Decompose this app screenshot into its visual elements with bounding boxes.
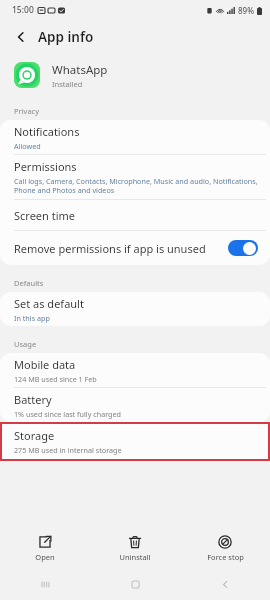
button[interactable]: Battery [0,388,270,422]
button[interactable]: Back [8,24,34,50]
button[interactable]: WhatsApp [0,54,270,96]
staticText: WhatsApp [52,62,108,78]
button[interactable]: Set as default [0,292,270,326]
button[interactable]: Recent apps [0,568,90,600]
staticText: Notifications [14,124,80,139]
staticText: App info [38,28,94,46]
button[interactable]: Open [0,535,90,562]
staticText: Open [35,552,55,562]
staticText: Storage [14,428,55,443]
staticText: 1% used since last fully charged [14,409,121,419]
staticText: 275 MB used in internal storage [14,445,122,455]
staticText: Call logs, Camera, Contacts, Microphone,… [14,176,258,195]
staticText: Installed [52,79,83,89]
button[interactable]: Remove permissions toggle [228,240,258,256]
staticText: Set as default [14,296,84,311]
button[interactable]: Notifications [0,120,270,154]
staticText: Remove permissions if app is unused [14,241,206,256]
staticText: Usage [14,339,37,349]
staticText: Uninstall [119,552,151,562]
staticText: 89% [238,5,254,16]
button[interactable]: Mobile data [0,353,270,387]
staticText: Defaults [14,278,44,288]
staticText: Battery [14,392,52,407]
button[interactable]: Permissions [0,155,270,199]
button[interactable]: Force stop [180,535,270,562]
staticText: Screen time [14,208,76,223]
button[interactable]: Uninstall [90,535,180,562]
staticText: Allowed [14,141,41,151]
staticText: Privacy [14,106,40,116]
button[interactable]: Remove permissions if app is unused [0,231,270,265]
staticText: Mobile data [14,357,76,372]
staticText: Force stop [207,552,244,562]
staticText: In this app [14,313,50,323]
staticText: Permissions [14,159,77,174]
staticText: 124 MB used since 1 Feb [14,374,97,384]
staticText: 15:00 [12,4,34,16]
button[interactable]: Storage [0,422,270,461]
button[interactable]: Screen time [0,200,270,230]
button[interactable]: Home [90,568,180,600]
